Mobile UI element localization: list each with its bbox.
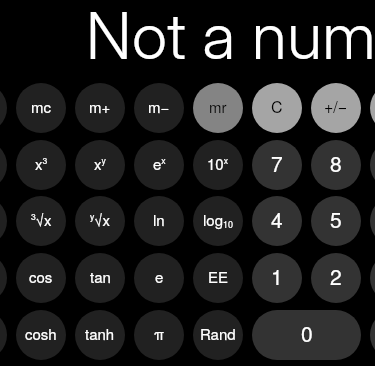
button[interactable]: Rand (193, 310, 243, 360)
button[interactable]: C (252, 83, 302, 133)
button[interactable]: 0 (252, 310, 361, 360)
button[interactable]: 3√x (16, 196, 66, 246)
button[interactable]: y√x (75, 196, 125, 246)
button[interactable]: 3 (370, 253, 375, 303)
staticText: 2 (330, 261, 342, 291)
staticText: 4 (271, 204, 283, 234)
button[interactable]: sin (0, 253, 7, 303)
staticText: 3√x (31, 209, 52, 230)
staticText: ex (153, 153, 166, 174)
button[interactable]: 2ⁿᵈ (0, 83, 7, 133)
button[interactable]: e (134, 253, 184, 303)
button[interactable]: EE (193, 253, 243, 303)
button[interactable]: log10 (193, 196, 243, 246)
button[interactable]: x2 (0, 140, 7, 190)
button[interactable]: 7 (252, 140, 302, 190)
button[interactable]: 2√x (0, 196, 7, 246)
button[interactable]: 2 (311, 253, 361, 303)
button[interactable]: mc (16, 83, 66, 133)
button[interactable]: 6 (370, 196, 375, 246)
staticText: cos (29, 266, 53, 287)
staticText: cosh (25, 323, 57, 344)
button[interactable]: ln (134, 196, 184, 246)
staticText: 8 (330, 148, 342, 178)
staticText: EE (208, 266, 229, 287)
button[interactable]: m− (134, 83, 184, 133)
staticText: tan (90, 266, 111, 287)
button[interactable]: 4 (252, 196, 302, 246)
button[interactable]: π (134, 310, 184, 360)
button[interactable]: sinh (0, 310, 7, 360)
button[interactable]: . (370, 310, 375, 360)
staticText: Rand (200, 323, 236, 344)
staticText: xy (94, 153, 106, 174)
staticText: 0 (301, 318, 313, 348)
staticText: ln (153, 209, 165, 230)
staticText: 10x (207, 153, 229, 174)
button[interactable]: 8 (311, 140, 361, 190)
button[interactable]: ex (134, 140, 184, 190)
button[interactable]: tan (75, 253, 125, 303)
staticText: Not a number (86, 0, 375, 74)
staticText: mc (31, 96, 51, 117)
button[interactable]: tanh (75, 310, 125, 360)
button[interactable]: x3 (16, 140, 66, 190)
staticText: 1 (271, 261, 283, 291)
button[interactable]: 1 (252, 253, 302, 303)
staticText: 7 (271, 148, 283, 178)
staticText: 5 (330, 204, 342, 234)
button[interactable]: 5 (311, 196, 361, 246)
button[interactable]: xy (75, 140, 125, 190)
staticText: e (155, 266, 164, 287)
button[interactable]: 9 (370, 140, 375, 190)
button[interactable]: 10x (193, 140, 243, 190)
staticText: +/− (324, 95, 348, 118)
staticText: C (271, 95, 283, 118)
staticText: π (154, 323, 165, 344)
staticText: y√x (90, 209, 110, 230)
staticText: x3 (35, 153, 48, 174)
button[interactable]: mr (193, 83, 243, 133)
staticText: log10 (203, 209, 234, 230)
button[interactable]: % (370, 83, 375, 133)
staticText: tanh (85, 323, 115, 344)
staticText: m+ (89, 96, 111, 117)
staticText: m− (148, 96, 170, 117)
button[interactable]: cos (16, 253, 66, 303)
staticText: mr (209, 96, 227, 117)
button[interactable]: m+ (75, 83, 125, 133)
button[interactable]: +/− (311, 83, 361, 133)
button[interactable]: cosh (16, 310, 66, 360)
